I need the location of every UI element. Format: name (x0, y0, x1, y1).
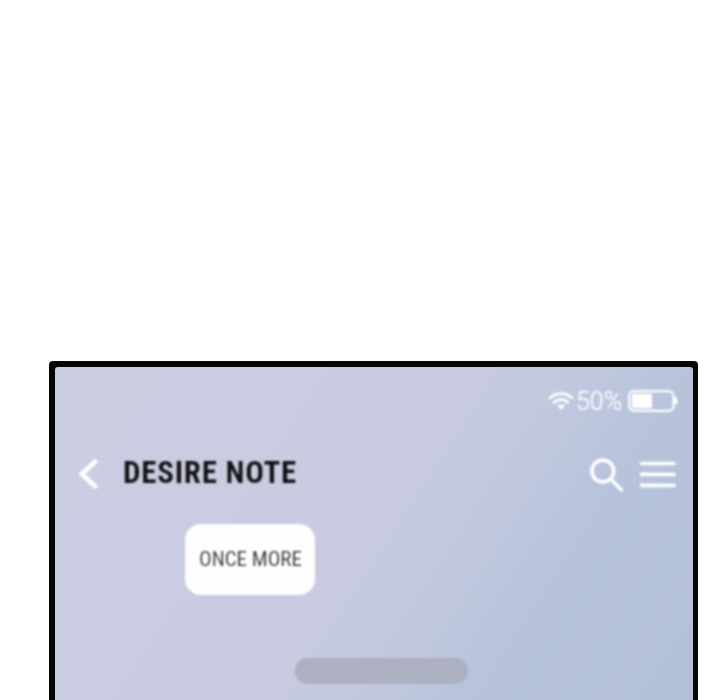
staticText: 50% (576, 387, 623, 416)
button[interactable]: Menu (631, 451, 685, 495)
staticText: DESIRE NOTE (123, 454, 298, 490)
button[interactable]: ONCE MORE (185, 524, 315, 595)
button[interactable]: Search (581, 449, 625, 493)
staticText: ONCE MORE (199, 547, 302, 572)
button[interactable]: Back (67, 452, 111, 496)
